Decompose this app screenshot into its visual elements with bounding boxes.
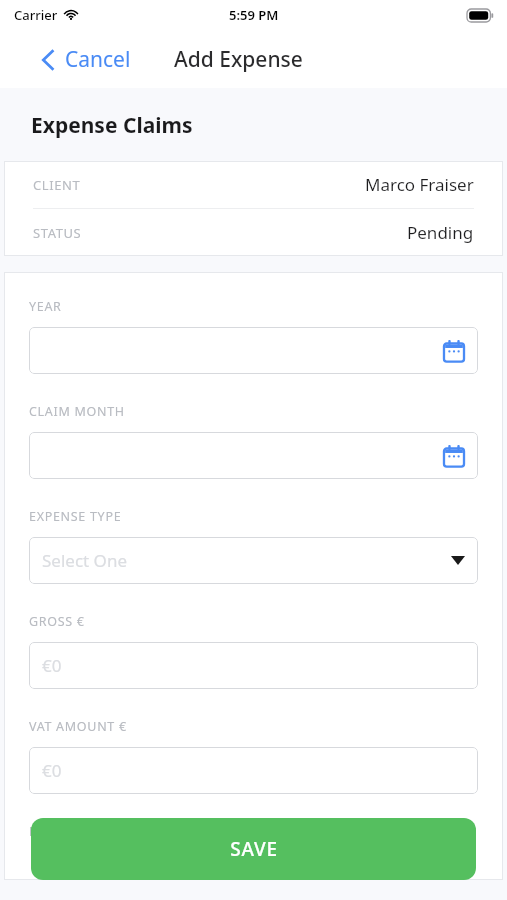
other: Pick date (443, 340, 465, 362)
other: Pick date (443, 445, 465, 467)
staticText: STATUS (33, 224, 82, 242)
staticText: Add Expense (174, 45, 303, 74)
staticText: Pending (407, 221, 474, 244)
staticText: €0 (42, 759, 62, 782)
staticText: Marco Fraiser (365, 173, 474, 196)
button[interactable]: SAVE (31, 818, 476, 880)
staticText: Select One (42, 549, 127, 572)
staticText: GROSS € (29, 613, 85, 630)
staticText: YEAR (29, 298, 62, 315)
staticText: Expense Claims (31, 111, 193, 140)
button[interactable]: €0 (29, 642, 478, 689)
other: Open list (451, 556, 465, 565)
staticText: Carrier (14, 6, 58, 24)
staticText: SAVE (230, 836, 278, 862)
button[interactable]: CLIENT (4, 161, 503, 208)
button[interactable]: Cancel (36, 39, 137, 80)
button[interactable]: €0 (29, 747, 478, 794)
button[interactable]: Pick date (29, 327, 478, 374)
staticText: DISALLOWANCE € (29, 823, 144, 840)
button[interactable]: STATUS (4, 209, 503, 256)
staticText: CLIENT (33, 176, 81, 194)
staticText: 5:59 PM (229, 6, 279, 24)
staticText: Cancel (65, 45, 131, 74)
button[interactable]: Select One (29, 537, 478, 584)
button[interactable]: Pick date (29, 432, 478, 479)
staticText: €0 (42, 654, 62, 677)
staticText: VAT AMOUNT € (29, 718, 127, 735)
staticText: EXPENSE TYPE (29, 508, 122, 525)
staticText: CLAIM MONTH (29, 403, 125, 420)
